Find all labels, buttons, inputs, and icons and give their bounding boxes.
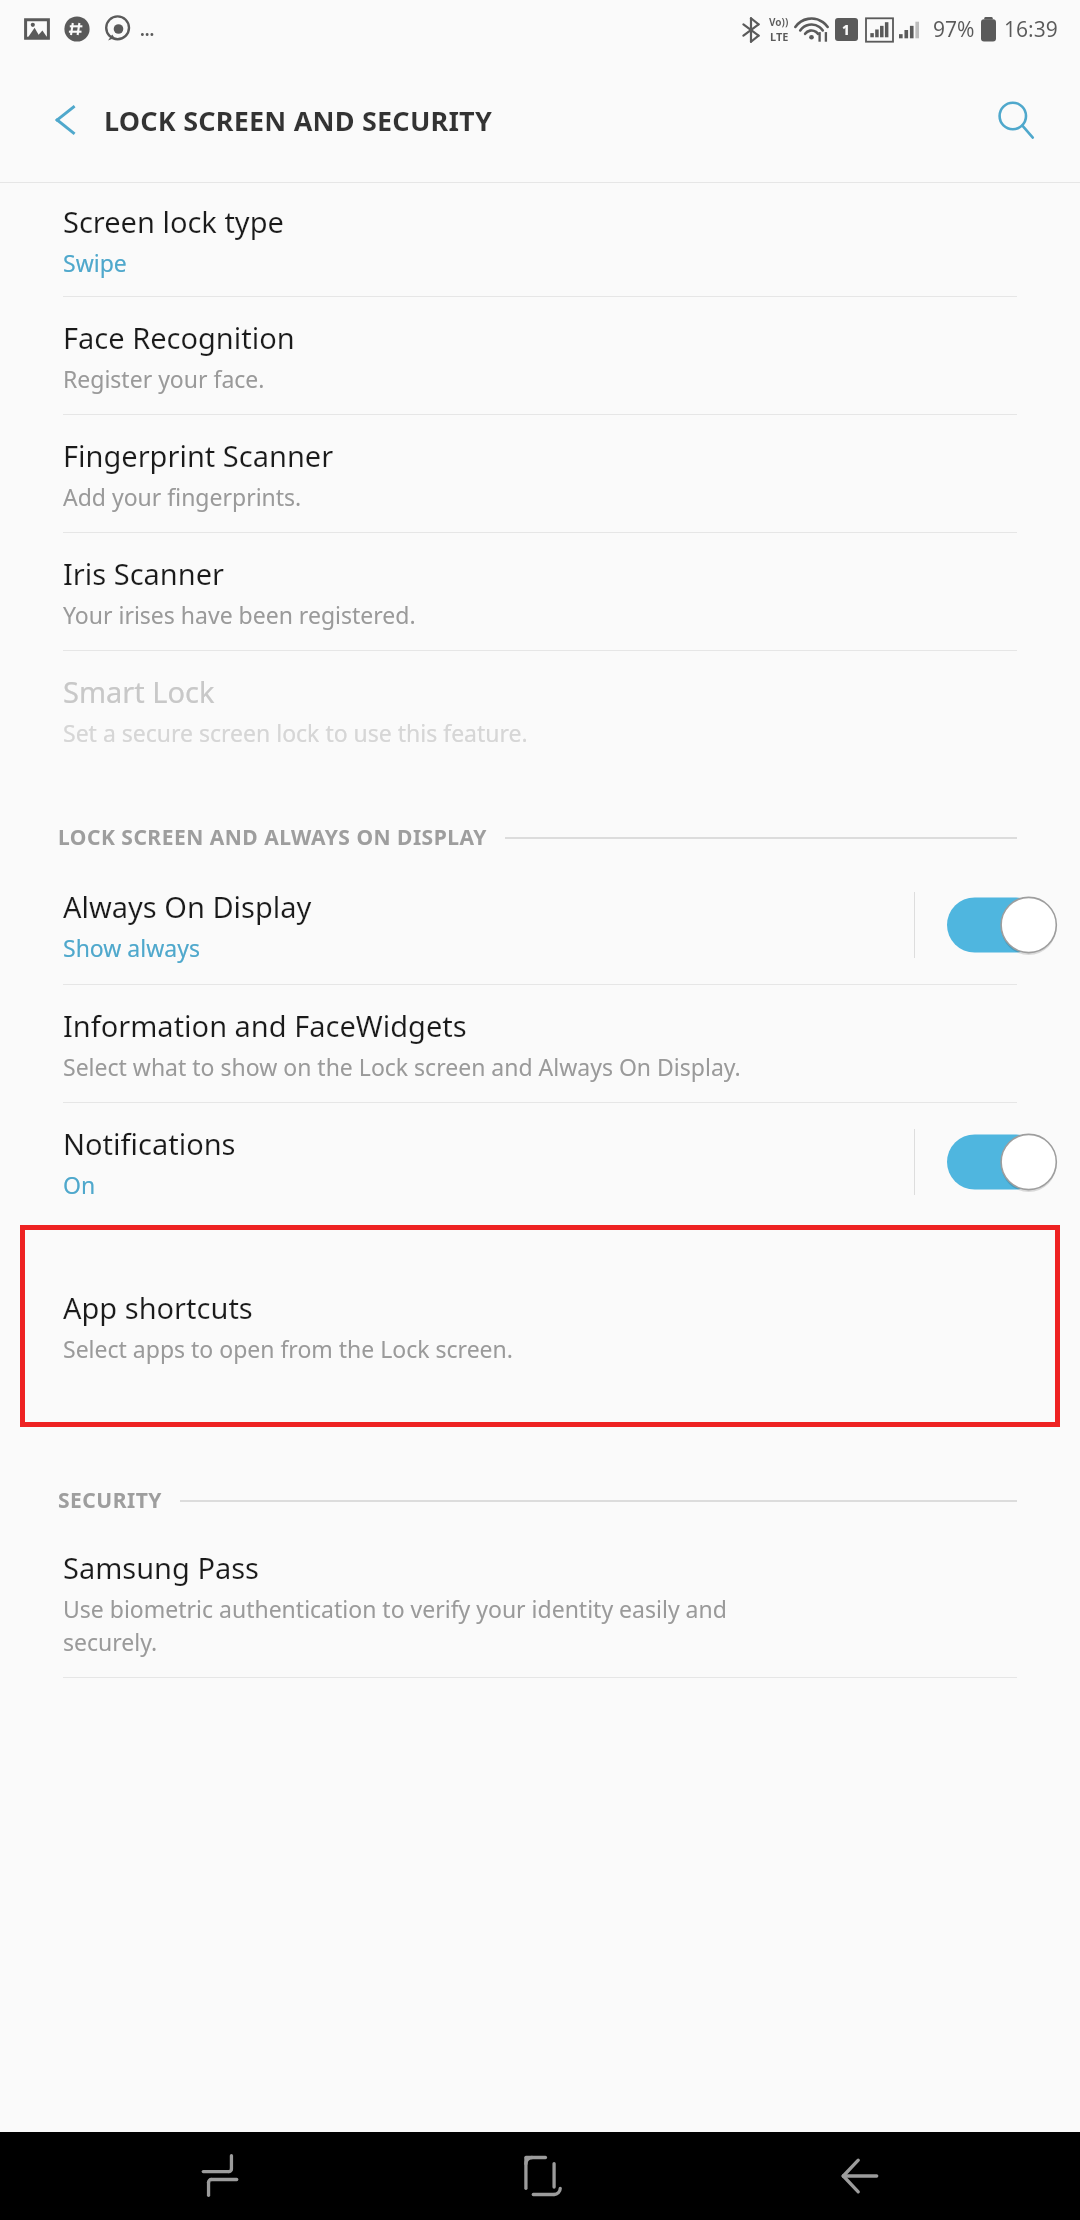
button[interactable]: Screen lock type: [0, 183, 1080, 296]
staticText: Fingerprint Scanner: [63, 436, 334, 475]
staticText: Samsung Pass: [63, 1548, 260, 1587]
staticText: Smart Lock: [63, 672, 215, 711]
staticText: Swipe: [63, 247, 127, 278]
staticText: Always On Display: [63, 887, 312, 926]
staticText: Register your face.: [63, 363, 265, 394]
staticText: LTE: [770, 29, 789, 44]
staticText: Add your fingerprints.: [63, 481, 302, 512]
button[interactable]: Back: [760, 2132, 960, 2220]
staticText: App shortcuts: [63, 1288, 253, 1327]
staticText: ...: [140, 18, 155, 41]
staticText: Select apps to open from the Lock screen…: [63, 1333, 513, 1364]
button[interactable]: Samsung Pass: [0, 1529, 1080, 1677]
button[interactable]: Toggle Notifications: [915, 1103, 1080, 1221]
staticText: Information and FaceWidgets: [63, 1006, 467, 1045]
button[interactable]: Iris Scanner: [0, 533, 1080, 650]
staticText: 1: [842, 20, 851, 39]
button[interactable]: Fingerprint Scanner: [0, 415, 1080, 532]
staticText: Select what to show on the Lock screen a…: [63, 1051, 741, 1082]
staticText: Screen lock type: [63, 202, 284, 241]
staticText: SECURITY: [58, 1486, 162, 1515]
button[interactable]: Search: [988, 92, 1044, 148]
staticText: Your irises have been registered.: [63, 599, 416, 630]
staticText: LOCK SCREEN AND SECURITY: [104, 102, 492, 139]
button[interactable]: Home: [440, 2132, 640, 2220]
button[interactable]: Face Recognition: [0, 297, 1080, 414]
staticText: Use biometric authentication to verify y…: [63, 1593, 727, 1658]
staticText: Iris Scanner: [63, 554, 225, 593]
staticText: Face Recognition: [63, 318, 295, 357]
button[interactable]: Recents: [120, 2132, 320, 2220]
button[interactable]: Information and FaceWidgets: [0, 985, 1080, 1102]
staticText: On: [63, 1169, 96, 1200]
button[interactable]: Back: [40, 94, 92, 146]
button[interactable]: App shortcuts: [20, 1225, 1060, 1427]
button[interactable]: Toggle Always On Display: [915, 866, 1080, 984]
staticText: Set a secure screen lock to use this fea…: [63, 717, 528, 748]
staticText: Show always: [63, 932, 200, 963]
button[interactable]: Notifications: [0, 1103, 1080, 1221]
staticText: LOCK SCREEN AND ALWAYS ON DISPLAY: [58, 823, 487, 852]
button[interactable]: Always On Display: [0, 866, 1080, 984]
staticText: Notifications: [63, 1124, 236, 1163]
staticText: 97%: [933, 15, 975, 44]
staticText: Vo)): [769, 15, 789, 29]
staticText: 16:39: [1004, 15, 1058, 44]
button[interactable]: Smart Lock: [0, 651, 1080, 768]
